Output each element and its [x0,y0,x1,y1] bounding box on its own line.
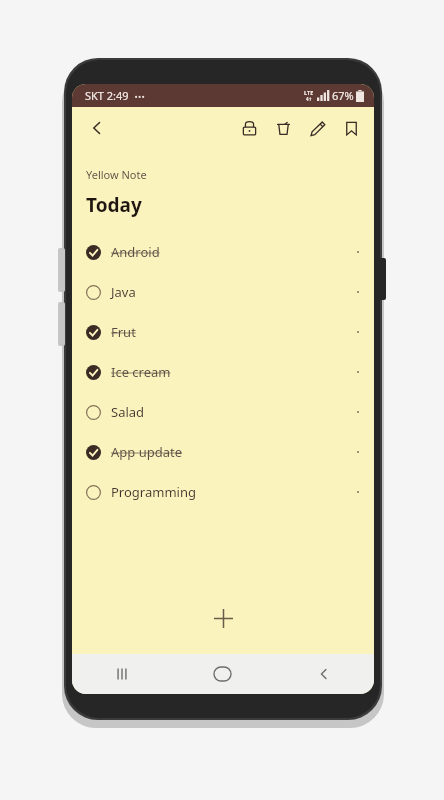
staticText: App update [111,443,183,461]
staticText: Yellow Note [86,167,147,182]
staticText: Today [86,192,142,218]
button[interactable]: Back [78,109,116,147]
staticText: 67% [332,88,354,103]
button[interactable]: Lock [232,111,266,145]
staticText: Salad [111,403,145,421]
button[interactable]: Frut [72,312,374,352]
button[interactable]: Bookmark [334,111,368,145]
button[interactable]: Recent apps [72,654,172,694]
button[interactable]: Home [172,654,273,694]
staticText: 4↑ [306,96,313,102]
button[interactable]: Delete [266,111,300,145]
staticText: Frut [111,323,136,341]
staticText: LTE [304,89,314,96]
staticText: Ice cream [111,363,171,381]
button[interactable]: Back [273,654,374,694]
staticText: SKT 2:49 [85,88,129,103]
button[interactable]: Ice cream [72,352,374,392]
staticText: Android [111,243,160,261]
button[interactable]: Edit [300,111,334,145]
button[interactable]: Salad [72,392,374,432]
button[interactable]: Add item [201,596,245,640]
button[interactable]: Programming [72,472,374,512]
button[interactable]: Android [72,232,374,272]
staticText: Java [111,283,136,301]
button[interactable]: Java [72,272,374,312]
staticText: Programming [111,483,196,501]
button[interactable]: App update [72,432,374,472]
